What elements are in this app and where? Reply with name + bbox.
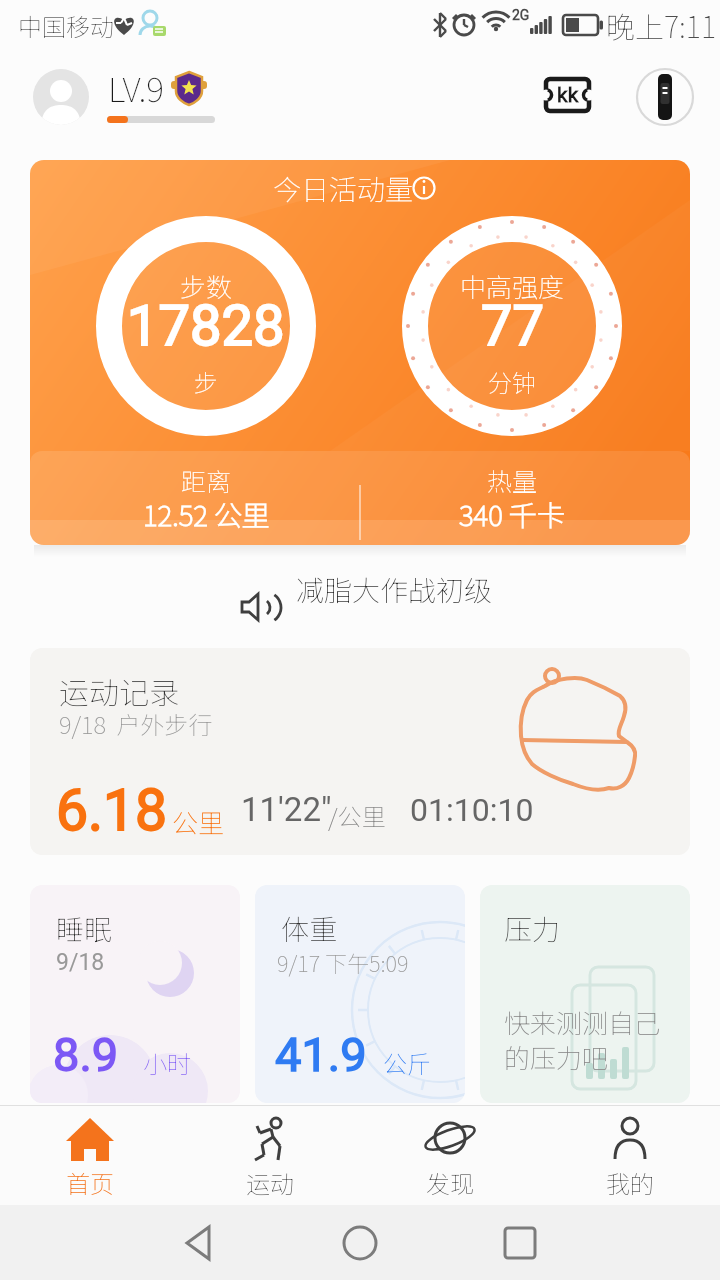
staticText: 体重 xyxy=(281,908,338,949)
staticText: 距离 xyxy=(181,462,232,498)
staticText: 减脂大作战初级 xyxy=(296,569,493,610)
staticText: 热量 xyxy=(487,462,538,498)
staticText: 6.18 xyxy=(56,777,168,844)
button[interactable]: 运动 xyxy=(180,1105,360,1205)
staticText: 睡眠 xyxy=(56,908,113,949)
staticText: 77 xyxy=(481,293,544,359)
staticText: 中国移动 xyxy=(18,8,114,43)
button[interactable] xyxy=(636,68,694,126)
staticText: 8.9 xyxy=(53,1027,119,1082)
staticText: 小时 xyxy=(143,1045,191,1080)
staticText: 2G xyxy=(512,7,530,23)
staticText: 步 xyxy=(194,364,218,399)
staticText: 发现 xyxy=(426,1165,474,1197)
staticText: 12.52 公里 xyxy=(143,494,270,535)
staticText: 首页 xyxy=(66,1165,114,1197)
staticText: /公里 xyxy=(328,798,386,833)
staticText: 步数 xyxy=(180,267,233,305)
staticText: 41.9 xyxy=(275,1027,367,1082)
button[interactable]: 首页 xyxy=(0,1105,180,1205)
staticText: 公斤 xyxy=(383,1045,431,1080)
button[interactable]: 压力 xyxy=(480,885,690,1103)
staticText: 的压力吧 xyxy=(504,1038,609,1076)
staticText: 01:10:10 xyxy=(410,791,534,829)
staticText: 快来测测自己 xyxy=(504,1003,661,1041)
button[interactable]: 发现 xyxy=(360,1105,540,1205)
staticText: LV.9 xyxy=(108,63,165,112)
button[interactable]: 运动记录 xyxy=(30,648,690,855)
button[interactable] xyxy=(33,69,89,125)
staticText: 今日活动量 xyxy=(273,168,414,209)
button[interactable]: 减脂大作战初级 xyxy=(234,585,504,629)
staticText: 9/18 xyxy=(56,949,105,976)
staticText: 分钟 xyxy=(488,364,536,399)
staticText: 运动 xyxy=(246,1165,294,1197)
staticText: 9/18 户外步行 xyxy=(59,706,213,741)
staticText: 9/17 下午5:09 xyxy=(277,946,409,978)
staticText: 340 千卡 xyxy=(459,494,565,535)
button[interactable]: kk xyxy=(544,76,591,114)
button[interactable]: 睡眠 xyxy=(30,885,240,1103)
button[interactable]: 今日活动量 xyxy=(30,160,690,545)
staticText: 我的 xyxy=(606,1165,654,1197)
staticText: 晚上7:11 xyxy=(606,4,717,46)
staticText: 公里 xyxy=(172,803,225,841)
staticText: 中高强度 xyxy=(460,267,565,305)
staticText: 运动记录 xyxy=(59,669,179,712)
staticText: 17828 xyxy=(127,293,285,359)
staticText: 11'22" xyxy=(241,790,332,829)
button[interactable]: 体重 xyxy=(255,885,465,1103)
button[interactable]: 我的 xyxy=(540,1105,720,1205)
staticText: kk xyxy=(557,83,579,108)
staticText: 压力 xyxy=(504,908,561,949)
